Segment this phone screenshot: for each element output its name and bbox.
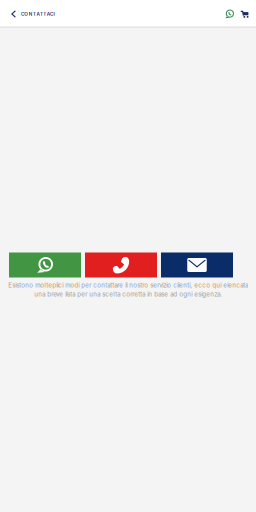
staticText: CONTATTACI <box>21 11 54 17</box>
button[interactable]: Email <box>161 252 233 277</box>
button[interactable]: Chiama <box>85 252 157 277</box>
button[interactable]: WhatsApp <box>222 1 237 27</box>
button[interactable]: CONTATTACI <box>0 1 60 27</box>
button[interactable]: WhatsApp <box>9 252 81 277</box>
staticText: Esistono molteplici modi per contattare … <box>8 281 248 298</box>
button[interactable]: Carrello <box>237 1 252 27</box>
